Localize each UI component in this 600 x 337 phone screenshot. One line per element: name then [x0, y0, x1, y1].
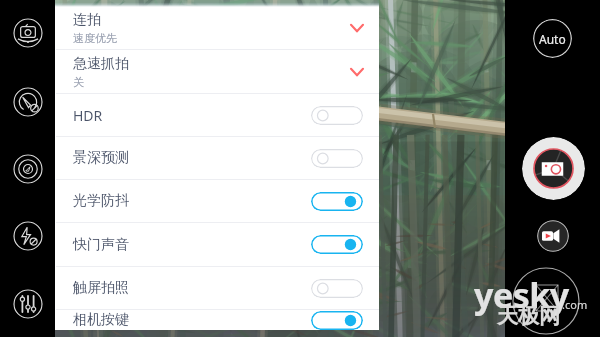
staticText: HDR — [73, 106, 103, 125]
button[interactable]: 快门声音 — [55, 223, 379, 266]
button[interactable]: Toggle off — [311, 279, 363, 298]
button[interactable]: Settings — [13, 289, 43, 319]
button[interactable]: Auto — [533, 19, 572, 58]
staticText: Auto — [539, 31, 566, 47]
button[interactable]: Shutter — [522, 137, 585, 200]
button[interactable]: HDR — [55, 94, 379, 136]
button[interactable]: Toggle on — [311, 235, 363, 254]
button[interactable]: Filter — [13, 154, 43, 184]
button[interactable]: 相机按键 — [55, 310, 379, 330]
button[interactable]: Timer off — [13, 87, 43, 117]
button[interactable]: Toggle on — [311, 192, 363, 211]
button[interactable]: 光学防抖 — [55, 180, 379, 222]
button[interactable]: Flash off — [13, 221, 43, 251]
staticText: 光学防抖 — [73, 192, 129, 210]
staticText: 速度优先 — [73, 31, 117, 45]
button[interactable]: Toggle on — [311, 311, 363, 330]
button[interactable]: 触屏拍照 — [55, 267, 379, 309]
staticText: 快门声音 — [73, 236, 129, 254]
staticText: 关 — [73, 75, 84, 89]
staticText: 连拍 — [73, 11, 101, 29]
staticText: 急速抓拍 — [73, 55, 129, 73]
staticText: 景深预测 — [73, 149, 129, 167]
button[interactable]: Toggle off — [311, 106, 363, 125]
button[interactable]: 急速抓拍 — [55, 50, 379, 93]
button[interactable]: 景深预测 — [55, 137, 379, 179]
button[interactable]: 连拍 — [55, 7, 379, 49]
staticText: 天极网 — [497, 303, 560, 329]
button[interactable]: Toggle off — [311, 149, 363, 168]
staticText: .com — [562, 297, 588, 312]
button[interactable]: Switch to video — [537, 220, 569, 252]
staticText: 相机按键 — [73, 311, 129, 329]
staticText: 触屏拍照 — [73, 279, 129, 297]
staticText: yesky — [474, 272, 569, 318]
button[interactable]: Panorama mode — [13, 18, 43, 48]
